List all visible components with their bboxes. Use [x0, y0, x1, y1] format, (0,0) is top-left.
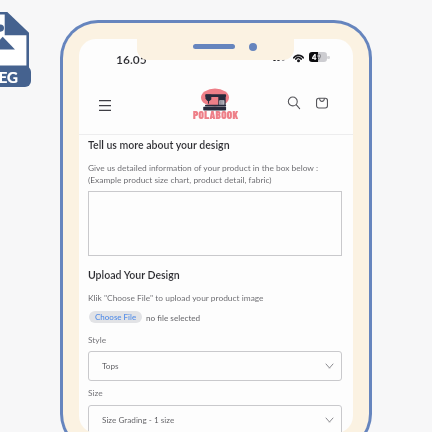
- button[interactable]: Search: [283, 92, 305, 114]
- staticText: Tops: [102, 361, 119, 371]
- staticText: Upload Your Design: [88, 269, 180, 282]
- staticText: JPEG: [0, 68, 19, 86]
- staticText: Size: [88, 388, 103, 398]
- button[interactable]: Choose File: [89, 311, 142, 323]
- button[interactable]: Cart: [311, 92, 333, 114]
- button[interactable]: Tops: [88, 351, 342, 381]
- staticText: 16.05: [116, 52, 147, 66]
- button[interactable]: Menu: [92, 93, 117, 117]
- staticText: Klik "Choose File" to upload your produc…: [88, 293, 264, 303]
- staticText: Size Grading - 1 size: [102, 415, 175, 425]
- staticText: Give us detailed information of your pro…: [88, 163, 319, 173]
- staticText: Style: [88, 335, 107, 345]
- staticText: POLABOOK: [193, 108, 239, 121]
- button[interactable]: [88, 191, 342, 256]
- staticText: Choose File: [95, 312, 137, 322]
- staticText: (Example product size chart, product det…: [88, 175, 272, 185]
- staticText: 9: [317, 53, 322, 62]
- staticText: no file selected: [146, 313, 201, 323]
- staticText: 4: [312, 53, 317, 62]
- button[interactable]: Size Grading - 1 size: [88, 405, 342, 432]
- staticText: Tell us more about your design: [88, 139, 230, 152]
